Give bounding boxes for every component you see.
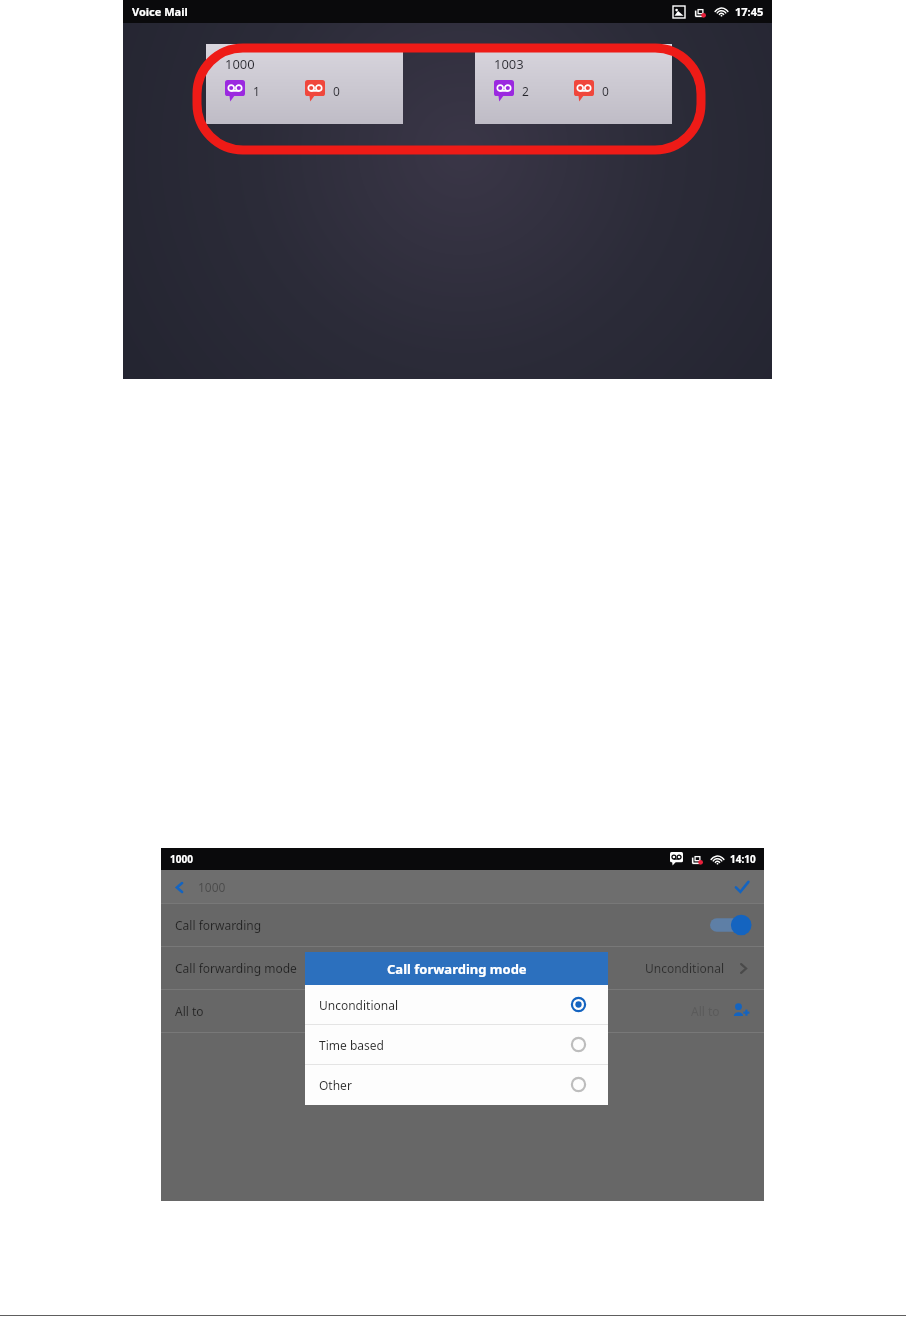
button[interactable]: Other — [305, 1065, 608, 1104]
staticText: 1000 — [198, 879, 226, 895]
staticText: 1 — [253, 83, 260, 99]
button[interactable]: Confirm — [734, 879, 764, 895]
button[interactable]: 1000 — [206, 44, 403, 124]
staticText: Call forwarding mode — [175, 960, 297, 976]
staticText: Call forwarding — [175, 917, 262, 933]
staticText: 17:45 — [735, 4, 764, 19]
button[interactable]: Call forwarding toggle — [710, 914, 750, 936]
button[interactable]: Call forwarding mode — [161, 947, 764, 989]
staticText: 1000 — [225, 55, 255, 73]
staticText: 2 — [522, 83, 529, 99]
button[interactable]: Back — [161, 879, 236, 895]
button[interactable]: All to — [161, 990, 764, 1032]
button[interactable]: 1003 — [475, 44, 672, 124]
staticText: 1000 — [170, 852, 193, 866]
staticText: 1003 — [494, 55, 524, 73]
staticText: Unconditional — [319, 997, 399, 1013]
button[interactable]: Unconditional — [305, 985, 608, 1024]
staticText: Time based — [319, 1037, 384, 1053]
staticText: All to — [691, 1003, 720, 1019]
staticText: 0 — [333, 83, 340, 99]
staticText: Call forwarding mode — [387, 960, 527, 978]
staticText: All to — [175, 1003, 204, 1019]
button[interactable]: Call forwarding — [161, 904, 764, 946]
staticText: Other — [319, 1077, 352, 1093]
staticText: 0 — [602, 83, 609, 99]
staticText: Unconditional — [645, 960, 725, 976]
staticText: 14:10 — [730, 852, 756, 866]
button[interactable]: Time based — [305, 1025, 608, 1064]
staticText: Voice Mail — [132, 4, 188, 19]
